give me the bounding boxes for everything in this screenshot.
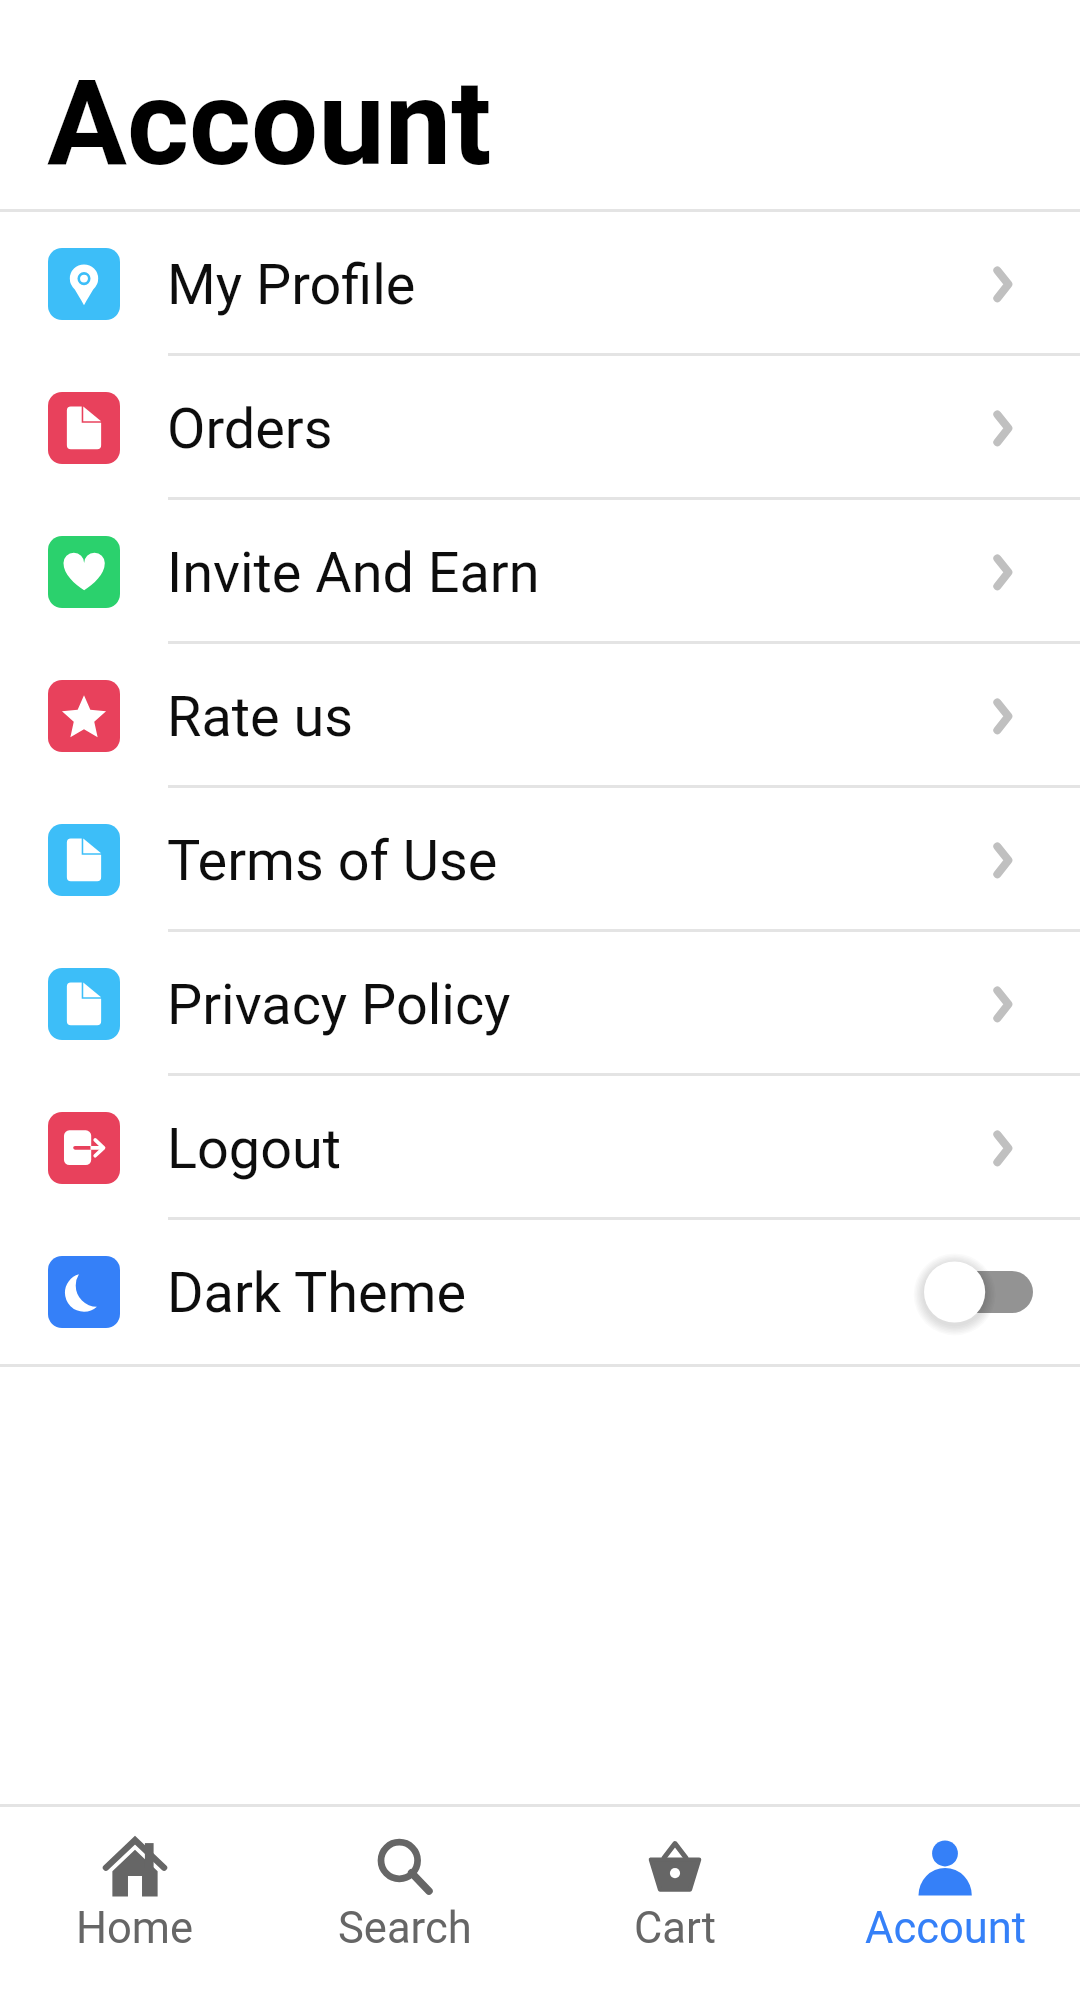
- staticText: Terms of Use: [167, 828, 498, 893]
- button[interactable]: Account: [810, 1807, 1080, 2003]
- staticText: Search: [338, 1903, 472, 1954]
- button[interactable]: Home: [0, 1807, 270, 2003]
- button[interactable]: Search: [270, 1807, 540, 2003]
- button[interactable]: Rate us: [0, 644, 1080, 788]
- button[interactable]: Logout: [0, 1076, 1080, 1220]
- staticText: Orders: [167, 396, 333, 461]
- button[interactable]: Dark Theme toggle, off: [924, 1247, 1033, 1337]
- button[interactable]: Cart: [540, 1807, 810, 2003]
- staticText: Cart: [634, 1903, 717, 1954]
- button[interactable]: Dark Theme: [0, 1220, 1080, 1364]
- button[interactable]: Privacy Policy: [0, 932, 1080, 1076]
- staticText: Home: [76, 1903, 194, 1954]
- staticText: My Profile: [167, 252, 416, 317]
- button[interactable]: Orders: [0, 356, 1080, 500]
- staticText: Logout: [167, 1116, 342, 1181]
- staticText: Account: [865, 1903, 1026, 1954]
- staticText: Invite And Earn: [167, 540, 540, 605]
- button[interactable]: Invite And Earn: [0, 500, 1080, 644]
- staticText: Privacy Policy: [167, 972, 511, 1037]
- staticText: Dark Theme: [167, 1260, 467, 1325]
- button[interactable]: My Profile: [0, 212, 1080, 356]
- staticText: Rate us: [167, 684, 353, 749]
- staticText: Account: [47, 54, 492, 193]
- button[interactable]: Terms of Use: [0, 788, 1080, 932]
